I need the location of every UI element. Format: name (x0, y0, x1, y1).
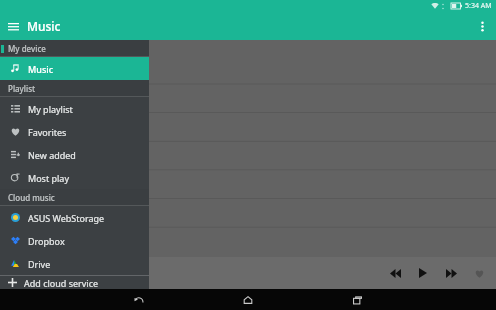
staticText: Add cloud service (24, 277, 99, 289)
staticText: Most play (28, 172, 70, 184)
button[interactable]: Play (414, 264, 432, 282)
button[interactable]: Back (129, 290, 149, 310)
button[interactable]: Home (238, 290, 258, 310)
button[interactable]: Favorite (470, 264, 488, 282)
button[interactable]: My playlist (0, 97, 149, 120)
staticText: My playlist (28, 103, 73, 115)
staticText: Dropbox (28, 235, 65, 247)
staticText: 5:34 AM (465, 1, 492, 11)
staticText: ASUS WebStorage (28, 212, 105, 224)
staticText: Drive (28, 258, 51, 270)
button[interactable]: Open navigation drawer (2, 15, 24, 37)
button[interactable]: Dropbox (0, 229, 149, 252)
button[interactable]: Add cloud service (0, 276, 149, 289)
button[interactable]: Favorites (0, 120, 149, 143)
staticText: New added (28, 149, 76, 161)
staticText: My device (8, 43, 46, 54)
button[interactable]: Drive (0, 252, 149, 275)
button[interactable]: Previous (386, 264, 404, 282)
staticText: Cloud music (8, 192, 55, 203)
button[interactable]: ASUS WebStorage (0, 206, 149, 229)
staticText: Favorites (28, 126, 67, 138)
button[interactable]: More options (471, 15, 493, 37)
staticText: Music (28, 63, 54, 75)
button[interactable]: Recents (347, 290, 367, 310)
staticText: Music (27, 18, 61, 34)
button[interactable]: Music (0, 57, 149, 80)
button[interactable]: New added (0, 143, 149, 166)
staticText: Playlist (8, 83, 36, 94)
button[interactable]: Most play (0, 166, 149, 189)
button[interactable]: Next (442, 264, 460, 282)
